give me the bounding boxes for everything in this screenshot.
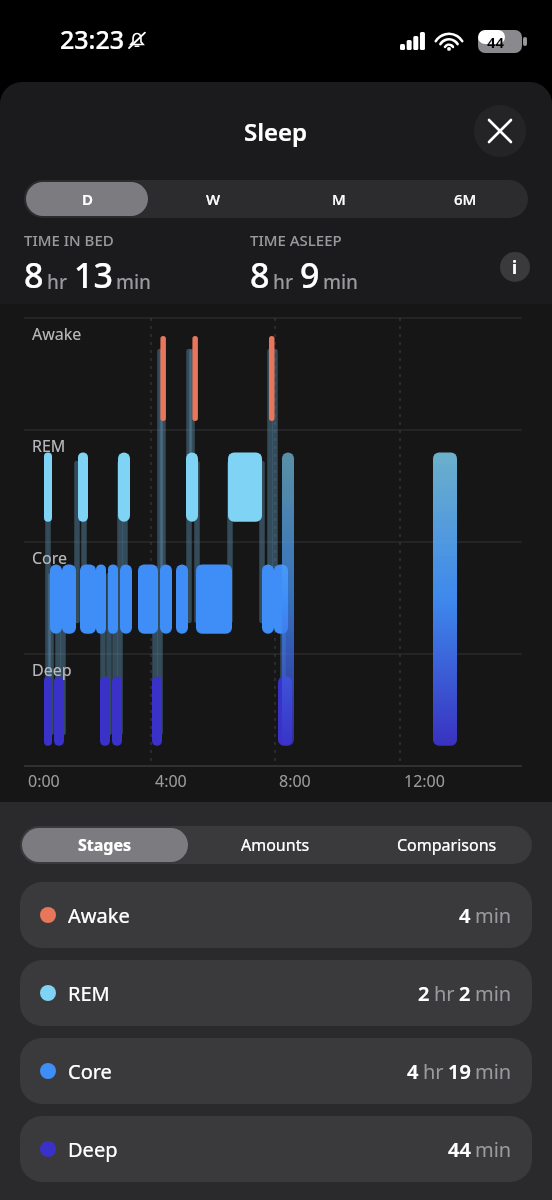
staticText: D [82, 189, 93, 209]
staticText: 8 [250, 252, 270, 298]
button[interactable]: Deep [20, 1116, 532, 1182]
staticText: Stages [78, 834, 132, 856]
staticText: 4:00 [155, 770, 187, 792]
staticText: Deep [68, 1136, 118, 1163]
staticText: Core [32, 547, 68, 569]
staticText: min [475, 980, 512, 1007]
staticText: Amounts [241, 834, 310, 856]
staticText: Awake [68, 902, 130, 929]
staticText: 44 [448, 1136, 471, 1163]
button[interactable]: Comparisons [363, 828, 530, 862]
staticText: 8:00 [279, 770, 311, 792]
staticText: hr [434, 980, 455, 1007]
staticText: i [512, 256, 518, 279]
staticText: min [116, 269, 152, 295]
button[interactable]: W [152, 182, 274, 216]
staticText: REM [32, 435, 66, 457]
staticText: min [475, 1136, 512, 1163]
button[interactable]: 6M [404, 182, 526, 216]
staticText: 4 [459, 902, 471, 929]
staticText: 13 [74, 252, 113, 298]
button[interactable]: Info [500, 252, 530, 282]
staticText: W [206, 189, 221, 209]
staticText: 6M [454, 189, 477, 209]
staticText: hr [273, 269, 293, 295]
staticText: min [323, 269, 359, 295]
button[interactable]: Awake [20, 882, 532, 948]
button[interactable]: Core [20, 1038, 532, 1104]
staticText: TIME IN BED [24, 230, 114, 250]
staticText: 2 [418, 980, 430, 1007]
staticText: 9 [300, 252, 320, 298]
staticText: 44 [487, 32, 505, 52]
staticText: TIME ASLEEP [250, 230, 342, 250]
staticText: Awake [32, 323, 82, 345]
staticText: Core [68, 1058, 112, 1085]
staticText: min [475, 1058, 512, 1085]
button[interactable]: REM [20, 960, 532, 1026]
button[interactable]: Amounts [192, 828, 359, 862]
staticText: Comparisons [397, 834, 497, 856]
staticText: 19 [448, 1058, 471, 1085]
staticText: Sleep [244, 115, 308, 148]
staticText: hr [47, 269, 67, 295]
button[interactable]: M [278, 182, 400, 216]
button[interactable]: D [26, 182, 148, 216]
staticText: REM [68, 980, 110, 1007]
staticText: M [332, 189, 346, 209]
staticText: Deep [32, 659, 72, 681]
staticText: 8 [24, 252, 44, 298]
staticText: 0:00 [28, 770, 60, 792]
staticText: min [475, 902, 512, 929]
staticText: 23:23 [60, 22, 125, 56]
button[interactable]: Stages [22, 828, 188, 862]
staticText: 2 [459, 980, 471, 1007]
staticText: 12:00 [404, 770, 445, 792]
staticText: hr [423, 1058, 444, 1085]
button[interactable]: Close [474, 105, 526, 157]
staticText: 4 [407, 1058, 419, 1085]
